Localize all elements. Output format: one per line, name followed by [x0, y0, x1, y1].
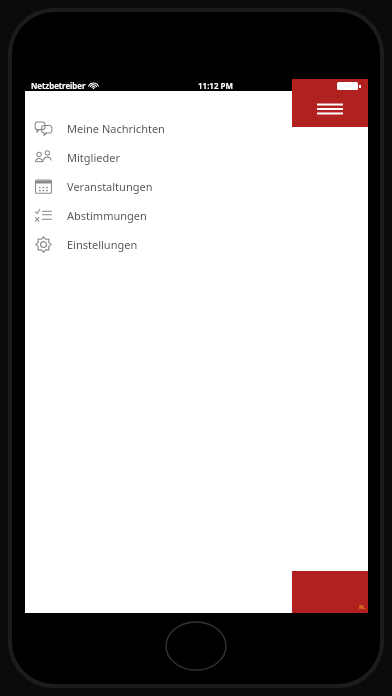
staticText: Mitglieder	[67, 150, 120, 165]
button[interactable]: Open navigation menu	[292, 79, 368, 127]
staticText: Netzbetreiber	[31, 80, 86, 91]
button[interactable]: Meine Nachrichten	[25, 114, 368, 143]
staticText: Abstimmungen	[67, 208, 147, 223]
button[interactable]: Banner	[292, 571, 368, 613]
button[interactable]: Abstimmungen	[25, 201, 368, 230]
staticText: N.	[359, 603, 366, 611]
staticText: Meine Nachrichten	[67, 121, 165, 136]
button[interactable]: Einstellungen	[25, 230, 368, 259]
button[interactable]: Mitglieder	[25, 143, 368, 172]
staticText: Veranstaltungen	[67, 179, 153, 194]
staticText: 11:12 PM	[198, 80, 233, 91]
staticText: Einstellungen	[67, 237, 138, 252]
button[interactable]: Veranstaltungen	[25, 172, 368, 201]
